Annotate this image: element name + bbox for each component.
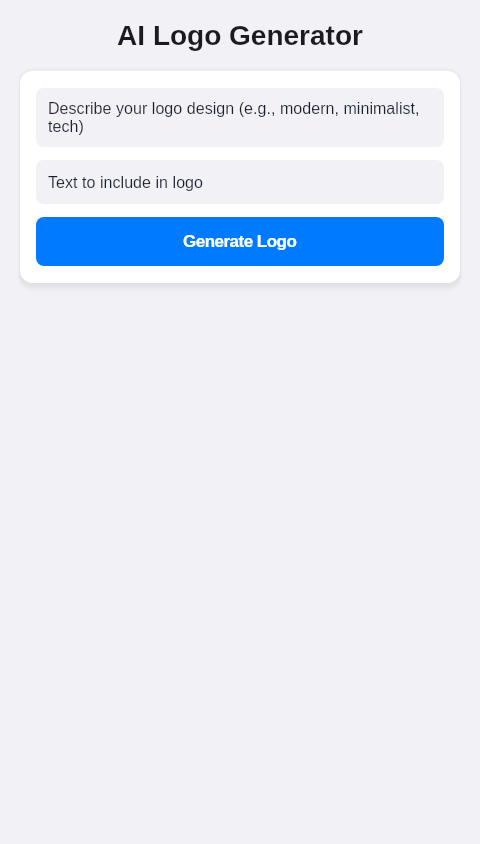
button[interactable]: Logo text input [36,160,444,204]
staticText: Text to include in logo [48,174,203,192]
staticText: Generate Logo [183,232,297,251]
button[interactable]: Logo description input [36,88,444,147]
staticText: AI Logo Generator [117,20,363,51]
staticText: Describe your logo design (e.g., modern,… [48,100,431,136]
button[interactable]: Generate Logo [36,217,444,266]
